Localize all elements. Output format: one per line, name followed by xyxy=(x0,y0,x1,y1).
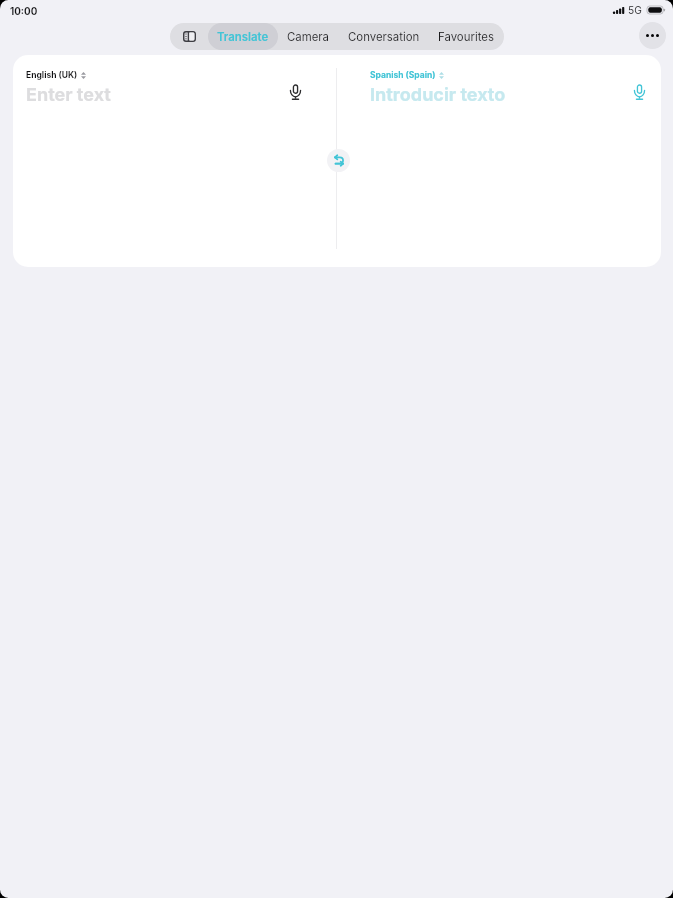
button[interactable]: English (UK) xyxy=(26,70,86,80)
staticText: Enter text xyxy=(26,84,111,106)
staticText: Camera xyxy=(287,30,330,44)
button[interactable]: Swap languages xyxy=(327,149,350,172)
button[interactable]: Voice input xyxy=(283,80,307,104)
button[interactable]: Show sidebar xyxy=(170,23,208,50)
staticText: 5G xyxy=(628,4,642,16)
staticText: English (UK) xyxy=(26,70,78,80)
staticText: Translate xyxy=(217,30,269,44)
staticText: Conversation xyxy=(348,30,420,44)
button[interactable]: More options xyxy=(639,22,666,49)
staticText: 10:00 xyxy=(10,6,38,18)
button[interactable]: Spanish (Spain) xyxy=(370,70,444,80)
button[interactable]: Conversation xyxy=(339,23,429,50)
button[interactable]: Voice input xyxy=(627,80,651,104)
staticText: Favourites xyxy=(438,30,494,44)
button[interactable]: Camera xyxy=(278,23,339,50)
button[interactable]: Favourites xyxy=(429,23,503,50)
staticText: Spanish (Spain) xyxy=(370,70,436,80)
staticText: Introducir texto xyxy=(370,84,506,106)
button[interactable]: Translate xyxy=(208,23,278,50)
